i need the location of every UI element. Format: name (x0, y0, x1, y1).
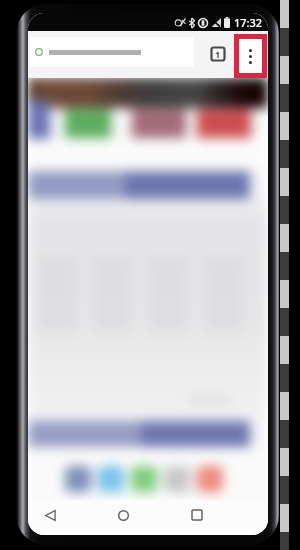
button[interactable]: Share option 5 (197, 466, 223, 492)
button[interactable]: More options (234, 34, 267, 78)
button[interactable]: Share option 2 (98, 466, 124, 492)
staticText: 1 (215, 48, 221, 60)
button[interactable]: Recent apps (184, 502, 210, 528)
staticText: 17:32 (234, 15, 263, 30)
button[interactable]: Share option 3 (131, 466, 157, 492)
button[interactable] (30, 37, 194, 67)
button[interactable]: Share option 1 (65, 466, 91, 492)
button[interactable]: Home (110, 502, 136, 528)
button[interactable]: Tabs (210, 46, 226, 62)
button[interactable]: Share option 4 (164, 466, 190, 492)
button[interactable]: Back (37, 502, 63, 528)
